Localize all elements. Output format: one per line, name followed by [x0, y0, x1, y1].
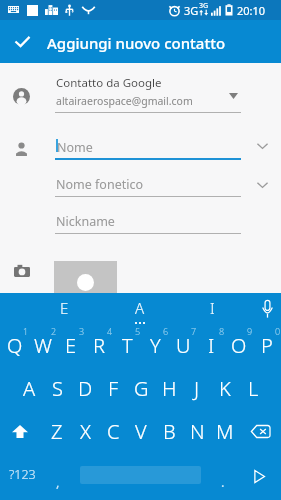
staticText: 20:10	[237, 3, 266, 18]
staticText: Q	[7, 332, 23, 359]
staticText: 3	[79, 325, 85, 337]
staticText: Nome	[57, 139, 93, 156]
staticText: Nickname	[56, 213, 115, 230]
button[interactable]: R	[85, 324, 113, 367]
staticText: 3G	[199, 1, 209, 11]
staticText: H	[162, 375, 177, 402]
staticText: J	[194, 375, 200, 402]
button[interactable]: F	[99, 367, 127, 410]
staticText: V	[135, 418, 147, 445]
button[interactable]: Scegli account	[221, 84, 245, 108]
button[interactable]: K	[211, 367, 239, 410]
staticText: E	[65, 332, 77, 359]
staticText: O	[231, 332, 247, 359]
staticText: S	[52, 375, 63, 402]
button[interactable]: Espandi	[251, 174, 273, 196]
button[interactable]: Cancella	[239, 410, 281, 453]
button[interactable]: M	[211, 410, 239, 453]
button[interactable]: E	[44, 293, 84, 324]
button[interactable]: C	[99, 410, 127, 453]
staticText: 1	[23, 325, 29, 337]
button[interactable]: N	[183, 410, 211, 453]
button[interactable]: B	[155, 410, 183, 453]
staticText: 7	[191, 325, 197, 337]
staticText: X	[80, 418, 91, 445]
staticText: P	[261, 332, 273, 359]
staticText: ?123	[9, 466, 36, 483]
staticText: Z	[51, 418, 63, 445]
button[interactable]: T	[113, 324, 141, 367]
staticText: 9	[247, 325, 253, 337]
staticText: G	[134, 375, 149, 402]
button[interactable]: Spazio	[80, 453, 201, 496]
button[interactable]: Invio	[241, 453, 277, 496]
staticText: Y	[150, 332, 161, 359]
staticText: 8	[219, 325, 225, 337]
staticText: U	[176, 332, 191, 359]
button[interactable]	[50, 207, 245, 237]
staticText: 4	[107, 325, 113, 337]
button[interactable]: Q	[0, 324, 29, 367]
staticText: E	[60, 298, 69, 318]
button[interactable]: I	[197, 324, 225, 367]
staticText: T	[122, 332, 133, 359]
button[interactable]: H	[155, 367, 183, 410]
staticText: 0	[275, 325, 281, 337]
button[interactable]: L	[239, 367, 267, 410]
staticText: R	[93, 332, 105, 359]
staticText: Aggiungi nuovo contatto	[47, 33, 226, 53]
staticText: A	[23, 375, 36, 402]
button[interactable]	[0, 68, 281, 112]
button[interactable]: A	[120, 293, 160, 324]
button[interactable]: S	[43, 367, 71, 410]
staticText: N	[190, 418, 205, 445]
button[interactable]: A	[15, 367, 43, 410]
button[interactable]: Espandi	[251, 135, 273, 157]
button[interactable]: Salva contatto	[0, 20, 44, 63]
staticText: I	[210, 298, 215, 318]
button[interactable]: X	[71, 410, 99, 453]
staticText: Contatto da Google	[56, 75, 162, 91]
staticText: 3G	[184, 3, 199, 18]
button[interactable]: Foto contatto	[54, 261, 117, 293]
button[interactable]: J	[183, 367, 211, 410]
staticText: B	[163, 418, 176, 445]
staticText: altairaerospace@gmail.com	[56, 94, 193, 108]
staticText: F	[108, 375, 119, 402]
button[interactable]: V	[127, 410, 155, 453]
staticText: D	[78, 375, 93, 402]
staticText: L	[248, 375, 259, 402]
button[interactable]: W	[29, 324, 57, 367]
button[interactable]: U	[169, 324, 197, 367]
button[interactable]: E	[57, 324, 85, 367]
button[interactable]: Maiuscole	[0, 410, 43, 453]
staticText: K	[219, 375, 231, 402]
button[interactable]	[50, 170, 245, 200]
staticText: M	[216, 418, 234, 445]
staticText: C	[107, 418, 120, 445]
staticText: Nome fonetico	[56, 176, 143, 193]
staticText: I	[208, 332, 215, 359]
button[interactable]: Y	[141, 324, 169, 367]
button[interactable]: .	[201, 453, 245, 496]
staticText: 5	[135, 325, 141, 337]
button[interactable]: ?123	[0, 453, 45, 496]
staticText: ,	[56, 473, 60, 491]
staticText: W	[34, 332, 52, 359]
button[interactable]: ,	[40, 453, 75, 496]
button[interactable]: Aggiungi foto	[14, 264, 30, 278]
button[interactable]: P	[253, 324, 281, 367]
button[interactable]: I	[192, 293, 232, 324]
staticText: 6	[163, 325, 169, 337]
button[interactable]: G	[127, 367, 155, 410]
button[interactable]: O	[225, 324, 253, 367]
button[interactable]: Input vocale	[247, 293, 281, 324]
staticText: 2	[51, 325, 57, 337]
staticText: .	[221, 473, 225, 491]
button[interactable]: Z	[43, 410, 71, 453]
button[interactable]: D	[71, 367, 99, 410]
staticText: A	[135, 298, 145, 318]
button[interactable]	[50, 133, 245, 163]
